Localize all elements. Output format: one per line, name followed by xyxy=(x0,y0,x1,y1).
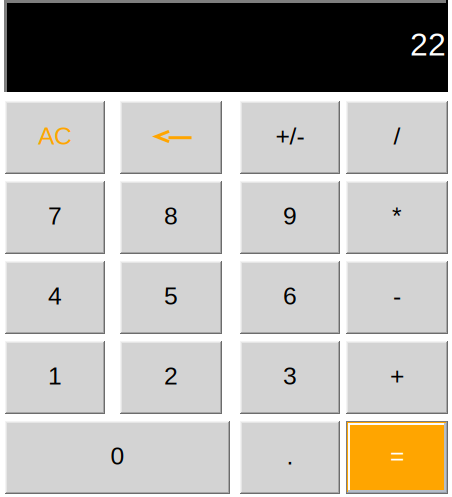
button[interactable]: = xyxy=(346,421,448,494)
staticText: 3 xyxy=(283,362,297,390)
staticText: / xyxy=(393,122,400,150)
staticText: * xyxy=(392,202,402,230)
button[interactable]: 7 xyxy=(5,181,105,254)
button[interactable]: 8 xyxy=(120,181,222,254)
button[interactable]: 3 xyxy=(240,341,340,414)
staticText: 9 xyxy=(283,202,297,230)
staticText: + xyxy=(390,362,404,390)
button[interactable]: - xyxy=(346,261,448,334)
button[interactable]: 9 xyxy=(240,181,340,254)
button[interactable]: Backspace xyxy=(120,101,222,174)
button[interactable]: . xyxy=(240,421,340,494)
staticText: 1 xyxy=(48,362,62,390)
button[interactable]: 6 xyxy=(240,261,340,334)
button[interactable]: * xyxy=(346,181,448,254)
button[interactable]: 4 xyxy=(5,261,105,334)
staticText: 8 xyxy=(164,202,178,230)
button[interactable]: AC xyxy=(5,101,105,174)
button[interactable]: 5 xyxy=(120,261,222,334)
button[interactable]: + xyxy=(346,341,448,414)
staticText: 0 xyxy=(110,442,124,470)
staticText: 22 xyxy=(410,27,446,62)
staticText: 4 xyxy=(48,282,62,310)
staticText: 6 xyxy=(283,282,297,310)
staticText: = xyxy=(390,442,404,470)
button[interactable]: +/- xyxy=(240,101,340,174)
staticText: AC xyxy=(38,122,72,150)
button[interactable]: 2 xyxy=(120,341,222,414)
staticText: 7 xyxy=(48,202,62,230)
staticText: 2 xyxy=(164,362,178,390)
staticText: +/- xyxy=(275,122,304,150)
staticText: - xyxy=(393,282,401,310)
button[interactable]: 0 xyxy=(5,421,230,494)
staticText: . xyxy=(286,442,293,470)
button[interactable]: 1 xyxy=(5,341,105,414)
staticText: 5 xyxy=(164,282,178,310)
button[interactable]: / xyxy=(346,101,448,174)
